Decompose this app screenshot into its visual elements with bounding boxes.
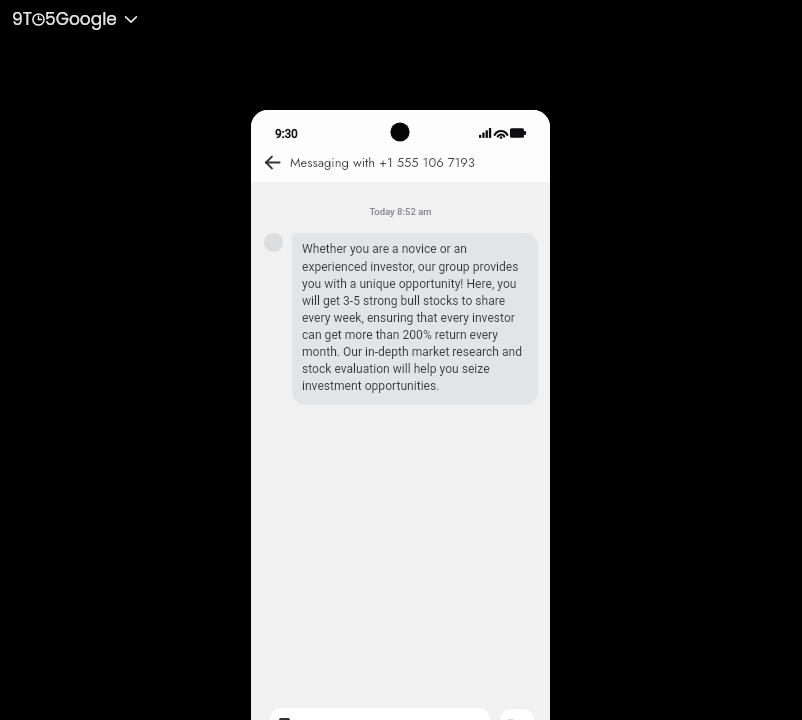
staticText: 9T: [12, 7, 32, 31]
button[interactable]: Back: [257, 147, 287, 177]
staticText: 9:30: [275, 127, 298, 141]
button[interactable]: Expand menu: [122, 10, 140, 28]
staticText: Whether you are a novice or an experienc…: [302, 242, 523, 393]
button[interactable]: Whether you are a novice or an experienc…: [292, 233, 538, 405]
staticText: 5Google: [45, 7, 117, 31]
button[interactable]: Send: [500, 709, 534, 720]
staticText: Today 8:52 am: [251, 206, 550, 217]
button[interactable]: Text message field: [270, 708, 490, 720]
staticText: Messaging with +1 555 106 7193: [290, 153, 475, 172]
